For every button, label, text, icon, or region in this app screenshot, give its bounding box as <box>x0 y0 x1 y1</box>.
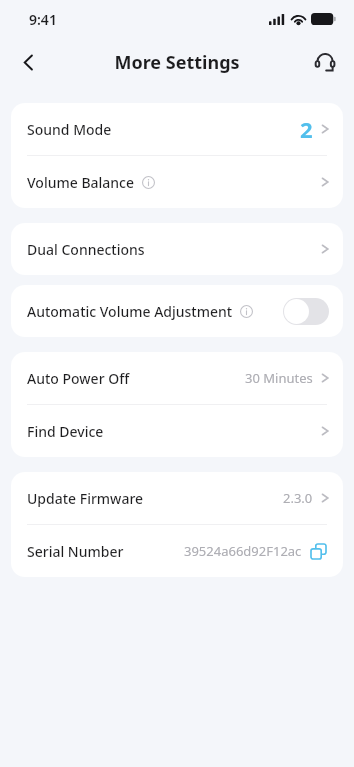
button[interactable]: Dual Connections <box>11 223 343 275</box>
staticText: Serial Number <box>27 542 124 561</box>
button[interactable]: Update Firmware <box>11 472 343 524</box>
staticText: 2.3.0 <box>283 489 313 507</box>
button[interactable]: Auto Power Off <box>11 352 343 404</box>
staticText: 30 Minutes <box>245 369 313 387</box>
button[interactable]: Serial Number <box>11 525 343 577</box>
staticText: Find Device <box>27 422 104 441</box>
staticText: Auto Power Off <box>27 369 130 388</box>
staticText: Update Firmware <box>27 489 144 508</box>
button[interactable]: Volume Balance <box>11 156 343 208</box>
staticText: Sound Mode <box>27 120 112 139</box>
staticText: More Settings <box>114 50 240 75</box>
staticText: Automatic Volume Adjustment <box>27 302 233 321</box>
button[interactable]: Copy serial number <box>307 540 329 562</box>
button[interactable]: Automatic Volume Adjustment <box>283 298 329 325</box>
button[interactable]: Find Device <box>11 405 343 457</box>
staticText: Volume Balance <box>27 173 135 192</box>
button[interactable]: Sound Mode <box>11 103 343 155</box>
button[interactable]: Back <box>6 40 50 84</box>
staticText: 2 <box>300 114 313 144</box>
button[interactable]: Automatic Volume Adjustment <box>11 285 343 337</box>
staticText: 9:41 <box>29 10 57 29</box>
button[interactable]: Support <box>304 41 346 83</box>
staticText: Dual Connections <box>27 240 145 259</box>
staticText: 39524a66d92F12ac <box>184 542 302 560</box>
